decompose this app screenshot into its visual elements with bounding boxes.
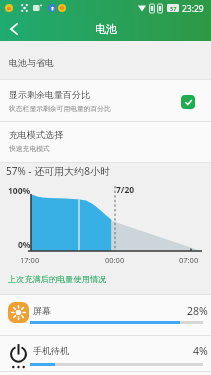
staticText: 快速充电模式 bbox=[9, 144, 50, 153]
staticText: 07:00 bbox=[179, 255, 199, 265]
staticText: 手机待机 bbox=[33, 345, 69, 356]
staticText: 17:00 bbox=[20, 255, 40, 265]
staticText: 100% bbox=[8, 185, 31, 197]
staticText: 57% - 还可用大约8小时 bbox=[6, 164, 110, 178]
staticText: 上次充满后的电量使用情况 bbox=[8, 274, 107, 284]
staticText: 显示剩余电量百分比 bbox=[9, 89, 90, 100]
button[interactable]: Toggle show battery percentage bbox=[181, 95, 195, 109]
button[interactable]: Back bbox=[1, 16, 26, 41]
staticText: 屏幕 bbox=[33, 305, 51, 316]
staticText: 充电模式选择 bbox=[9, 129, 63, 140]
staticText: 0% bbox=[18, 239, 31, 251]
staticText: 电池 bbox=[95, 22, 117, 36]
button[interactable]: 充电模式选择 bbox=[0, 122, 211, 162]
staticText: 4% bbox=[193, 344, 208, 358]
staticText: 7/20 bbox=[116, 184, 135, 196]
button[interactable]: 屏幕 bbox=[0, 295, 211, 335]
button[interactable]: 显示剩余电量百分比 bbox=[0, 80, 211, 121]
staticText: 23:29 bbox=[182, 3, 204, 15]
staticText: 57 bbox=[170, 5, 177, 12]
button[interactable]: 手机待机 bbox=[0, 336, 211, 375]
staticText: 28% bbox=[187, 304, 208, 318]
staticText: 00:00 bbox=[105, 255, 125, 265]
staticText: 电池与省电 bbox=[9, 57, 54, 68]
staticText: 状态栏显示剩余可用电量的百分比 bbox=[9, 104, 111, 113]
